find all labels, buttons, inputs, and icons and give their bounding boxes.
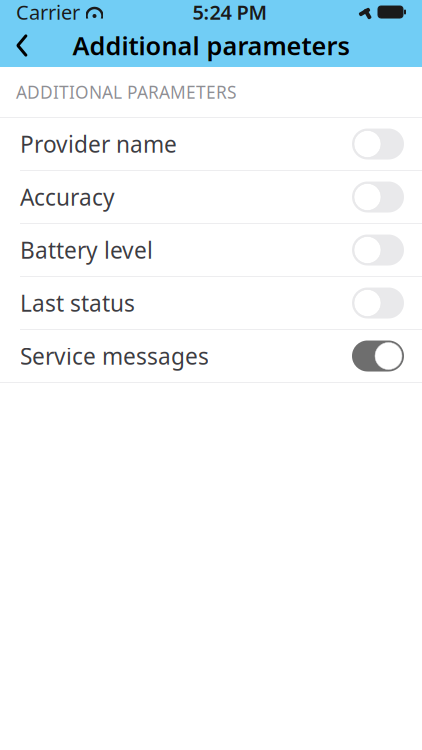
- button[interactable]: Back: [0, 24, 44, 67]
- button[interactable]: Service messages: [0, 330, 422, 382]
- staticText: Accuracy: [20, 182, 115, 212]
- button[interactable]: Battery level: [0, 224, 422, 276]
- staticText: Additional parameters: [72, 29, 349, 62]
- staticText: 5:24 PM: [192, 0, 267, 25]
- staticText: ADDITIONAL PARAMETERS: [16, 80, 237, 103]
- staticText: Carrier: [16, 0, 80, 25]
- staticText: Battery level: [20, 235, 153, 265]
- button[interactable]: Last status: [0, 277, 422, 329]
- button[interactable]: Accuracy: [0, 171, 422, 223]
- staticText: Service messages: [20, 341, 209, 371]
- staticText: Last status: [20, 288, 135, 318]
- button[interactable]: Provider name: [0, 118, 422, 170]
- staticText: Provider name: [20, 129, 177, 159]
